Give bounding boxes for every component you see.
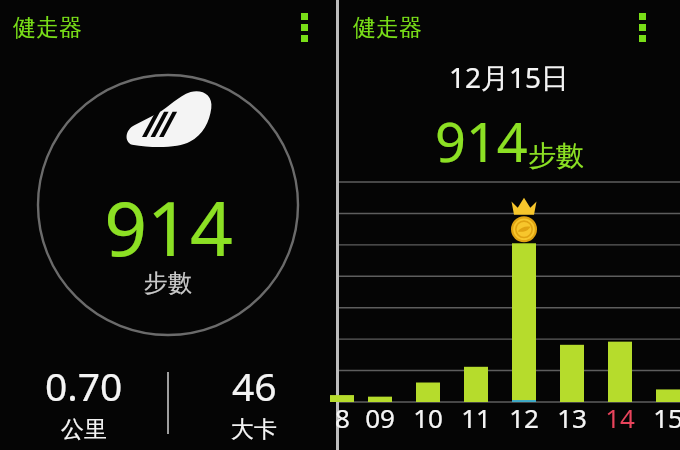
staticText: 8: [335, 400, 350, 435]
staticText: 914: [435, 104, 528, 178]
staticText: 46: [232, 359, 277, 412]
staticText: 13: [557, 400, 587, 435]
staticText: 10: [413, 400, 443, 435]
staticText: 09: [365, 400, 395, 435]
staticText: 15: [653, 400, 680, 435]
staticText: 12月15日: [449, 58, 570, 96]
staticText: 公里: [61, 415, 107, 444]
button[interactable]: 46: [176, 359, 332, 444]
staticText: 914: [104, 176, 233, 278]
staticText: 步數: [528, 138, 584, 173]
staticText: 大卡: [231, 415, 277, 444]
staticText: 12: [509, 400, 539, 435]
staticText: 步數: [144, 268, 192, 298]
button[interactable]: 健走器: [13, 13, 82, 42]
button[interactable]: 健走器: [353, 13, 422, 42]
button[interactable]: More options: [282, 5, 326, 49]
staticText: 11: [461, 400, 491, 435]
button[interactable]: 0.70: [6, 359, 162, 444]
button[interactable]: More options: [620, 5, 664, 49]
staticText: 0.70: [45, 359, 123, 412]
staticText: 14: [605, 400, 635, 435]
